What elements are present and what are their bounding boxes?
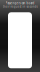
staticText: their request in seconds: [2, 5, 37, 8]
staticText: Passengers can board: [5, 1, 34, 5]
